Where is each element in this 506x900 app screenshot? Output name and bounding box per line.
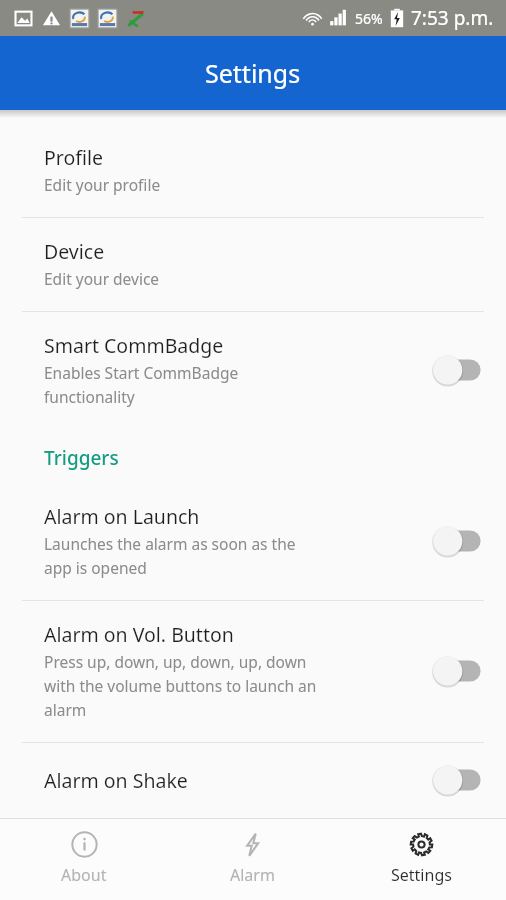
staticText: Alarm on Shake (44, 767, 188, 794)
button[interactable]: Alarm on Shake (0, 753, 506, 809)
staticText: Launches the alarm as soon as the app is… (44, 533, 296, 578)
staticText: Alarm on Vol. Button (44, 621, 234, 648)
staticText: Device (44, 238, 105, 265)
staticText: Enables Start CommBadge functionality (44, 362, 239, 407)
staticText: Press up, down, up, down, up, down with … (44, 651, 317, 720)
button[interactable]: Alarm on Launch (0, 493, 506, 590)
button[interactable]: Toggle (432, 654, 486, 688)
staticText: Settings (391, 864, 452, 886)
button[interactable]: Smart CommBadge (0, 322, 506, 419)
button[interactable]: Device (0, 228, 506, 301)
staticText: Edit your profile (44, 174, 161, 195)
staticText: 56% (355, 9, 383, 28)
button[interactable]: Alarm on Vol. Button (0, 611, 506, 732)
button[interactable]: Profile (0, 134, 506, 207)
staticText: Edit your device (44, 268, 160, 289)
staticText: Triggers (44, 445, 119, 471)
button[interactable]: About (0, 819, 168, 900)
button[interactable]: Toggle (432, 763, 486, 797)
staticText: Alarm (230, 864, 275, 886)
button[interactable]: Settings (337, 819, 506, 900)
staticText: Alarm on Launch (44, 503, 200, 530)
staticText: 7:53 p.m. (411, 5, 494, 31)
button[interactable]: Toggle (432, 353, 486, 387)
staticText: About (61, 864, 107, 886)
staticText: Settings (205, 56, 301, 90)
staticText: Profile (44, 144, 104, 171)
button[interactable]: Alarm (168, 819, 337, 900)
staticText: Smart CommBadge (44, 332, 224, 359)
button[interactable]: Toggle (432, 524, 486, 558)
